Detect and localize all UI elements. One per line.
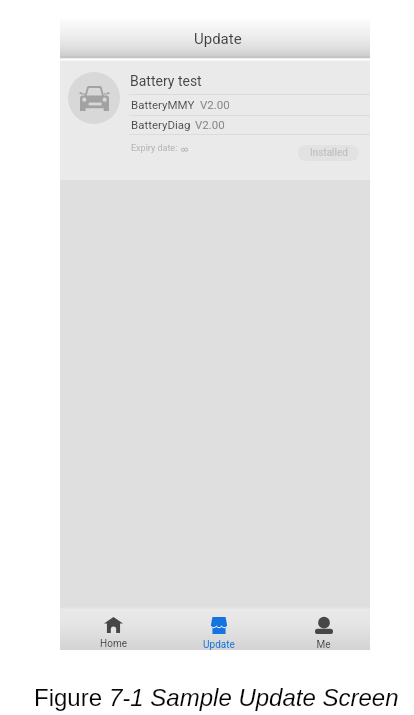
button[interactable]: Home xyxy=(61,607,165,650)
button[interactable]: Me xyxy=(272,607,375,650)
staticText: Figure xyxy=(34,684,109,711)
staticText: Update xyxy=(203,639,235,650)
staticText: BatteryMMY xyxy=(131,98,195,111)
other: Me xyxy=(315,617,333,634)
other: Update xyxy=(211,617,227,634)
button[interactable]: Installed xyxy=(298,145,359,161)
other: Home xyxy=(104,617,123,633)
staticText: 7-1 Sample Update Screen xyxy=(109,684,399,711)
staticText: Installed xyxy=(310,147,348,159)
staticText: Expiry date: xyxy=(131,143,178,154)
staticText: V2.00 xyxy=(195,118,225,131)
staticText: V2.00 xyxy=(200,98,230,111)
button[interactable]: Update xyxy=(167,607,270,650)
staticText: Home xyxy=(100,638,127,650)
staticText: BatteryDiag xyxy=(131,118,191,131)
staticText: Me xyxy=(316,639,331,650)
staticText: Battery test xyxy=(130,73,202,89)
button[interactable]: Battery test xyxy=(60,61,370,180)
staticText: Update xyxy=(194,30,242,48)
